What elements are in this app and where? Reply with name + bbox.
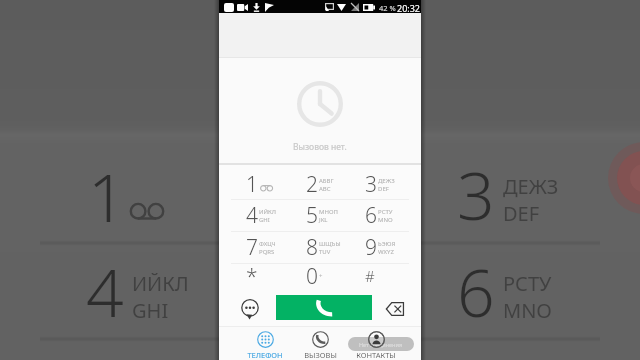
staticText: 1 [246, 170, 258, 199]
staticText: 42 % [379, 3, 396, 13]
staticText: 3 [457, 149, 495, 239]
staticText: КОНТАКТЫ [356, 350, 396, 360]
staticText: Вызовов нет. [293, 141, 347, 153]
staticText: ABC [319, 185, 331, 193]
button[interactable]: 8 [291, 232, 350, 263]
staticText: 2 [306, 170, 318, 199]
staticText: DEF [503, 200, 540, 227]
staticText: 4 [86, 246, 124, 336]
button[interactable]: 0 [291, 264, 350, 292]
staticText: * [246, 262, 258, 290]
staticText: JKL [319, 216, 328, 224]
staticText: 0 [306, 262, 318, 290]
button[interactable]: 7 [231, 232, 291, 263]
staticText: GHI [132, 297, 169, 324]
staticText: Нет соединения [359, 341, 403, 348]
button[interactable]: * [231, 264, 291, 292]
staticText: 3 [365, 170, 377, 199]
staticText: MNO [378, 216, 393, 224]
staticText: ВЫЗОВЫ [304, 350, 337, 360]
staticText: ДЕЖЗ [503, 173, 559, 200]
staticText: 8 [306, 233, 318, 262]
button[interactable]: 9 [350, 232, 409, 263]
staticText: GHI [259, 216, 270, 224]
staticText: ТЕЛЕФОН [247, 350, 283, 360]
staticText: WXYZ [378, 248, 394, 256]
staticText: ИЙКЛ [132, 270, 189, 297]
staticText: 6 [365, 201, 377, 230]
staticText: МНОП [319, 208, 338, 216]
staticText: РСТУ [503, 270, 552, 297]
staticText: ФХЦЧ [259, 240, 276, 248]
staticText: 1 [88, 151, 126, 241]
staticText: 6 [457, 246, 495, 336]
staticText: PQRS [259, 248, 275, 256]
button[interactable]: # [350, 264, 409, 292]
staticText: РСТУ [378, 208, 393, 216]
button[interactable]: 3 [350, 165, 409, 199]
button[interactable]: КОНТАКТЫ [348, 326, 403, 360]
button[interactable]: 1 [231, 165, 291, 199]
button[interactable]: Backspace [384, 299, 406, 319]
staticText: MNO [503, 297, 552, 324]
button[interactable]: 5 [291, 200, 350, 231]
button[interactable]: ВЫЗОВЫ [293, 326, 348, 360]
button[interactable]: 6 [350, 200, 409, 231]
staticText: ШЩЪЫ [319, 240, 341, 248]
staticText: 9 [365, 233, 377, 262]
staticText: ИЙКЛ [259, 208, 277, 216]
staticText: 7 [246, 233, 258, 262]
button[interactable]: ТЕЛЕФОН [237, 326, 293, 360]
staticText: 4 [246, 201, 258, 230]
staticText: ЬЭЮЯ [378, 240, 396, 248]
button[interactable]: More options [240, 299, 259, 318]
button[interactable]: Call [276, 295, 372, 320]
staticText: # [365, 266, 375, 286]
button[interactable]: 2 [291, 165, 350, 199]
staticText: 20:32 [397, 2, 421, 14]
staticText: 5 [306, 201, 318, 230]
staticText: + [319, 272, 323, 280]
staticText: TUV [319, 248, 331, 256]
staticText: ДЕЖЗ [378, 177, 395, 185]
button[interactable]: 4 [231, 200, 291, 231]
staticText: DEF [378, 185, 389, 193]
staticText: АБВГ [319, 177, 334, 185]
